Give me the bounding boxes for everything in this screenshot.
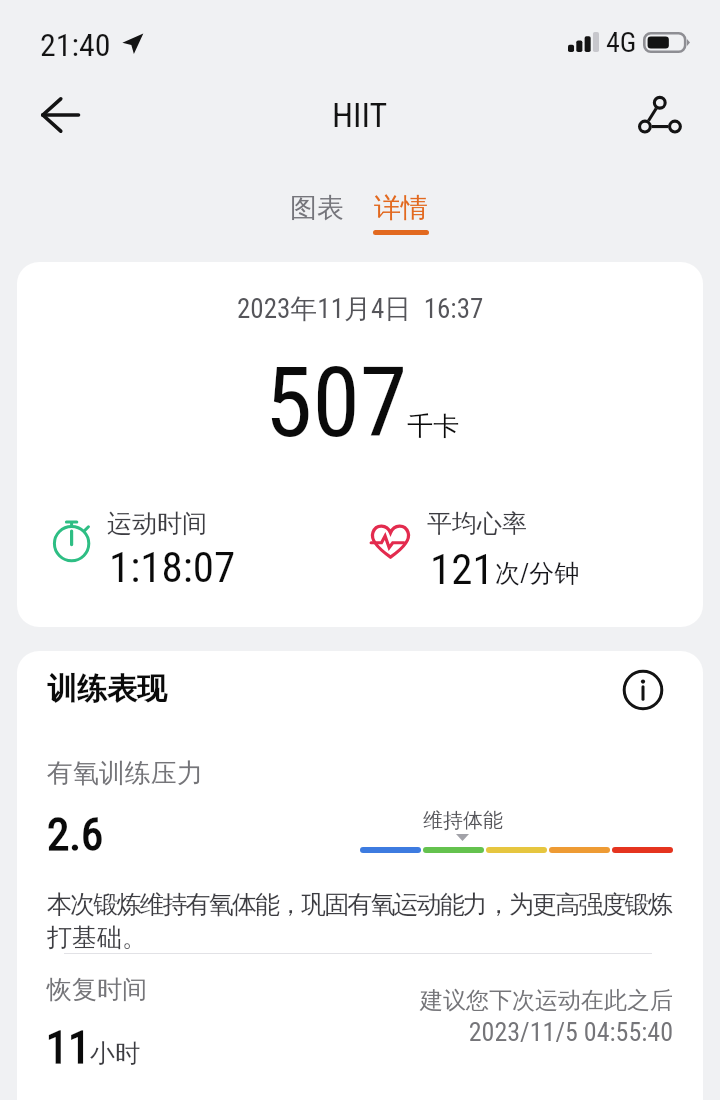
- staticText: 本次锻炼维持有氧体能，巩固有氧运动能力，为更高强度锻炼: [47, 889, 671, 920]
- staticText: HIIT: [332, 95, 388, 135]
- staticText: 121: [430, 544, 494, 594]
- staticText: 恢复时间: [47, 974, 147, 1005]
- staticText: 维持体能: [423, 808, 503, 833]
- staticText: 图表: [290, 191, 344, 225]
- button[interactable]: 详情: [362, 191, 440, 247]
- staticText: 507: [265, 347, 408, 460]
- staticText: 2023/11/5 04:55:40: [468, 1017, 673, 1047]
- staticText: 4G: [606, 26, 637, 59]
- staticText: 千卡: [407, 410, 459, 443]
- staticText: 训练表现: [47, 670, 167, 708]
- staticText: 21:40: [40, 26, 111, 64]
- staticText: 次/分钟: [495, 558, 580, 589]
- staticText: 有氧训练压力: [47, 757, 203, 790]
- staticText: 小时: [90, 1038, 140, 1069]
- staticText: 1:18:07: [109, 542, 236, 592]
- button[interactable]: Share: [619, 82, 699, 148]
- staticText: 2.6: [47, 808, 104, 861]
- staticText: 2023年11月4日 16:37: [237, 292, 484, 326]
- staticText: 建议您下次运动在此之后: [420, 986, 673, 1015]
- button[interactable]: Info: [617, 664, 669, 716]
- staticText: 11: [46, 1021, 91, 1074]
- staticText: 打基础。: [47, 922, 147, 953]
- staticText: 详情: [374, 191, 428, 225]
- button[interactable]: 2023年11月4日 16:37: [17, 262, 703, 627]
- staticText: 平均心率: [427, 508, 527, 539]
- button[interactable]: Back: [20, 82, 100, 148]
- staticText: 运动时间: [107, 508, 207, 539]
- button[interactable]: 图表: [278, 191, 356, 239]
